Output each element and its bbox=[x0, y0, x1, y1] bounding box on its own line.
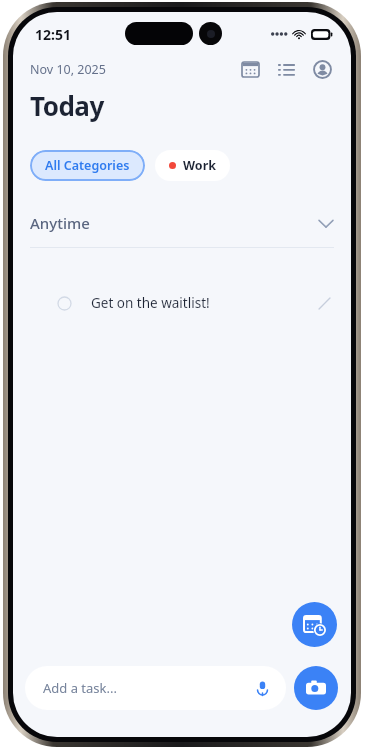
staticText: Anytime bbox=[30, 213, 90, 233]
button[interactable]: Calendar view bbox=[237, 56, 263, 82]
staticText: All Categories bbox=[45, 157, 130, 174]
button[interactable]: Work bbox=[155, 150, 230, 181]
button[interactable]: Voice input bbox=[251, 677, 273, 699]
button[interactable]: List view bbox=[273, 56, 299, 82]
button[interactable]: Add a task... bbox=[25, 666, 286, 710]
button[interactable]: Profile bbox=[309, 56, 335, 82]
button[interactable]: Camera bbox=[294, 666, 338, 710]
button[interactable]: Get on the waitlist! bbox=[13, 281, 351, 325]
button[interactable]: All Categories bbox=[30, 150, 145, 181]
button[interactable]: Anytime bbox=[13, 213, 351, 247]
staticText: Today bbox=[30, 88, 104, 123]
staticText: Add a task... bbox=[43, 679, 251, 697]
button[interactable]: Schedule task bbox=[292, 602, 337, 647]
button[interactable]: Edit task bbox=[315, 294, 333, 312]
staticText: Nov 10, 2025 bbox=[30, 61, 106, 78]
staticText: Get on the waitlist! bbox=[91, 294, 210, 312]
staticText: 12:51 bbox=[35, 25, 71, 44]
staticText: Work bbox=[183, 157, 216, 174]
